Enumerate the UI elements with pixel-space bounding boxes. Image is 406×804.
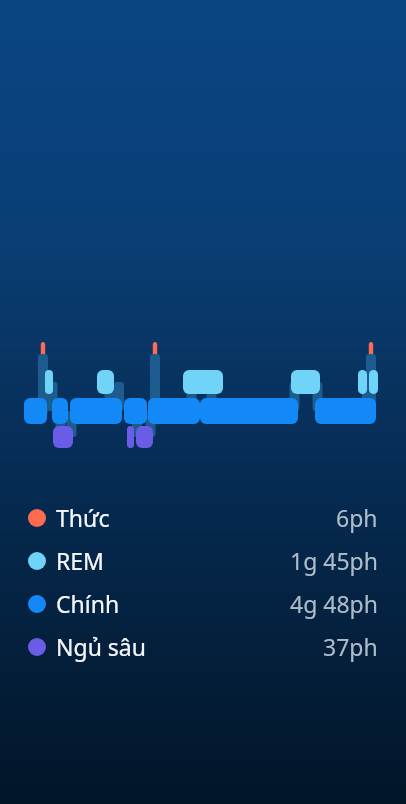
staticText: 1g 45ph [290, 545, 378, 576]
button[interactable]: Ngủ sâu [0, 625, 406, 668]
button[interactable]: Thức [0, 496, 406, 539]
button[interactable]: REM [0, 539, 406, 582]
staticText: 6ph [336, 502, 378, 533]
staticText: 4g 48ph [290, 588, 378, 619]
staticText: REM [56, 545, 104, 576]
staticText: Chính [56, 588, 120, 619]
staticText: 37ph [323, 631, 378, 662]
staticText: Thức [56, 502, 110, 533]
button[interactable]: Chính [0, 582, 406, 625]
staticText: Ngủ sâu [56, 631, 146, 662]
